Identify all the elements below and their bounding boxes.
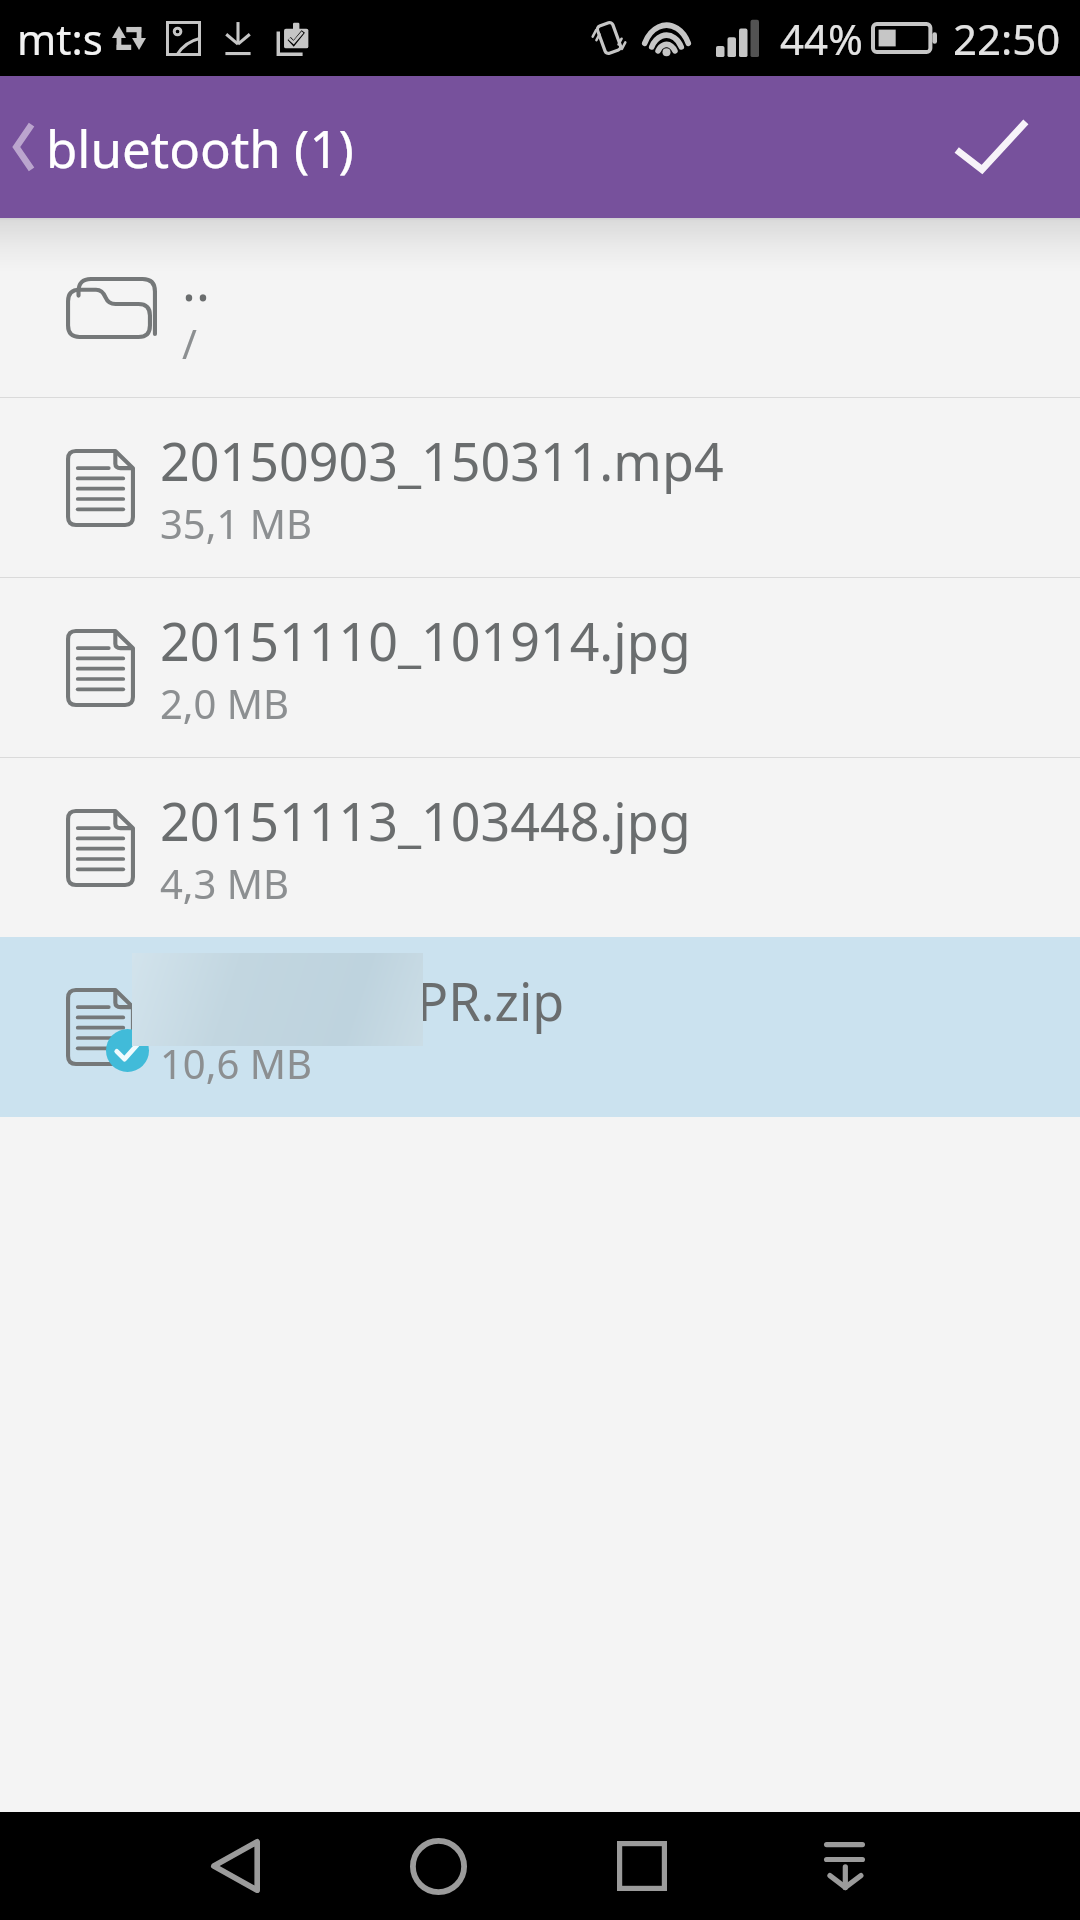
staticText: ..	[182, 245, 210, 316]
button[interactable]: Home	[337, 1812, 540, 1920]
button[interactable]: 20151110_101914.jpg	[0, 578, 1080, 757]
button[interactable]: ..	[0, 218, 1080, 397]
staticText: 35,1 MB	[160, 496, 312, 550]
staticText: 20150903_150311.mp4	[160, 425, 724, 496]
staticText: 2,0 MB	[160, 676, 290, 730]
staticText: 22:50	[953, 10, 1061, 67]
staticText: 10,6 MB	[160, 1036, 312, 1090]
staticText: 20151113_103448.jpg	[160, 785, 691, 856]
staticText: 44%	[780, 10, 863, 67]
button[interactable]: 20151113_103448.jpg	[0, 758, 1080, 937]
button[interactable]: Confirm selection	[912, 76, 1080, 218]
staticText: mt:s	[17, 10, 103, 67]
button[interactable]: Back	[134, 1812, 337, 1920]
staticText: 20151110_101914.jpg	[160, 605, 691, 676]
staticText: /	[182, 316, 197, 370]
button[interactable]: Navigate up, bluetooth (1)	[0, 76, 912, 218]
staticText: Scan_2015PR.zip	[160, 965, 565, 1036]
staticText: bluetooth (1)	[46, 113, 354, 182]
button[interactable]: Recents	[540, 1812, 743, 1920]
button[interactable]: 20150903_150311.mp4	[0, 398, 1080, 577]
button[interactable]: Scan_2015PR.zip	[0, 937, 1080, 1117]
button[interactable]: Hide navigation bar	[743, 1812, 946, 1920]
staticText: 4,3 MB	[160, 856, 290, 910]
